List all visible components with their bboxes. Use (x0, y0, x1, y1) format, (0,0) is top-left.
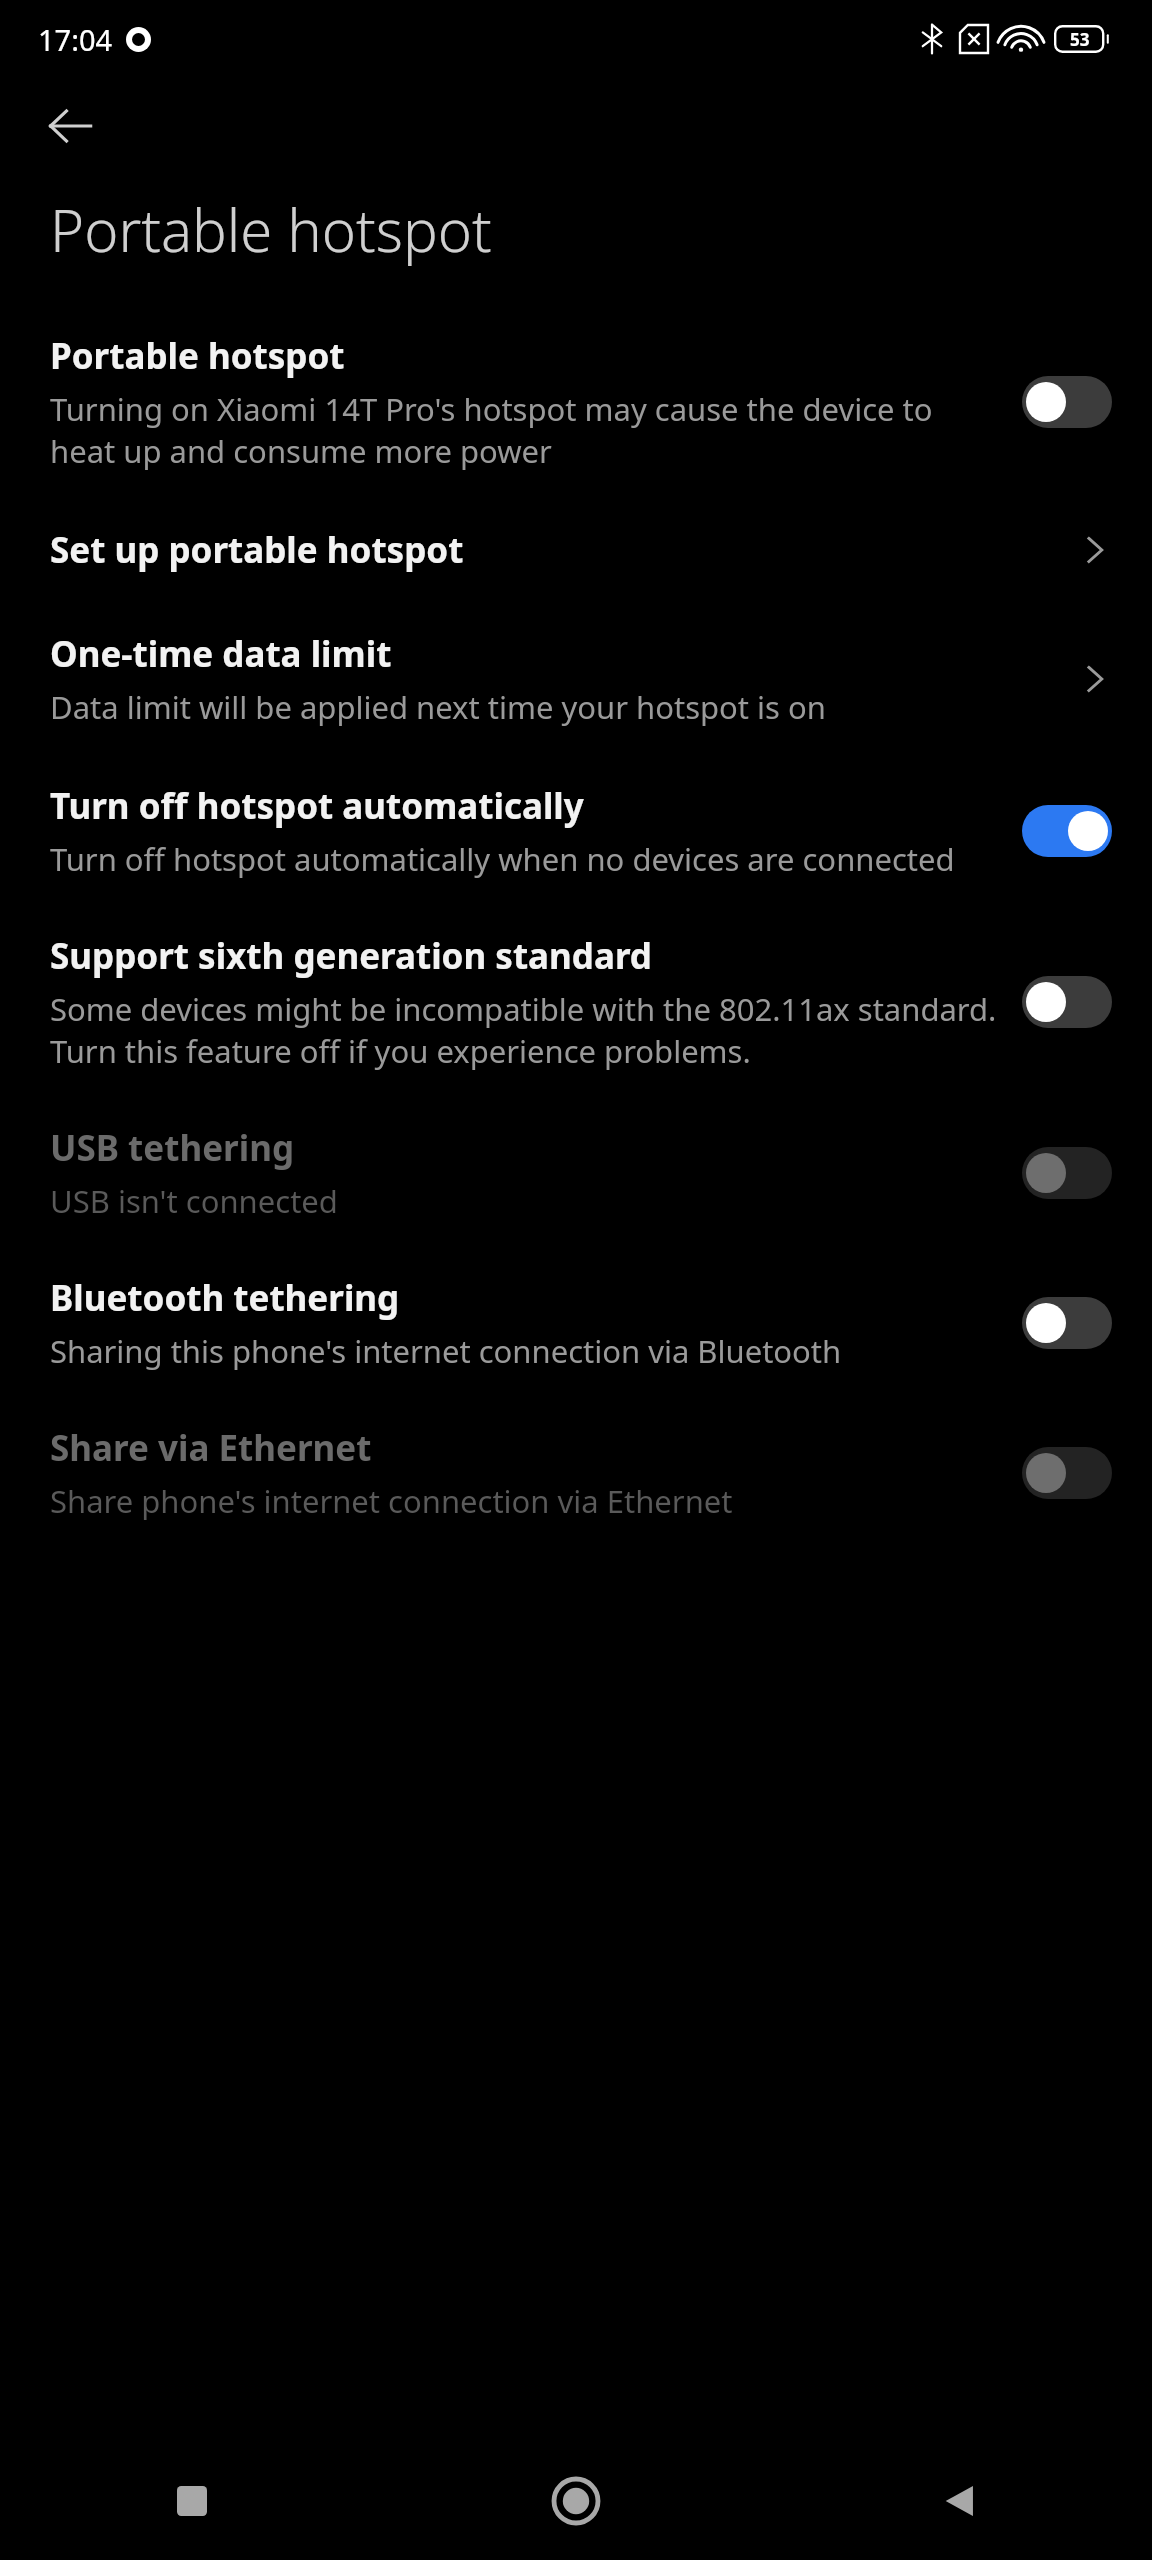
staticText: 17:04 (38, 20, 113, 59)
button[interactable]: Toggle (1022, 1297, 1112, 1349)
staticText: Data limit will be applied next time you… (50, 686, 826, 728)
button[interactable]: Toggle (1022, 376, 1112, 428)
button[interactable]: Portable hotspot (0, 306, 1152, 498)
button[interactable]: One-time data limit (0, 602, 1152, 756)
staticText: Turning on Xiaomi 14T Pro's hotspot may … (50, 388, 998, 472)
staticText: One-time data limit (50, 630, 392, 678)
staticText: USB tethering (50, 1124, 295, 1172)
button[interactable]: Toggle (1022, 805, 1112, 857)
button[interactable]: Home (384, 2442, 768, 2560)
button[interactable]: Turn off hotspot automatically (0, 756, 1152, 906)
staticText: Share phone's internet connection via Et… (50, 1480, 733, 1522)
staticText: USB isn't connected (50, 1180, 338, 1222)
button[interactable]: Back (30, 86, 110, 166)
button[interactable]: Toggle (1022, 976, 1112, 1028)
staticText: Support sixth generation standard (50, 932, 652, 980)
staticText: Turn off hotspot automatically when no d… (50, 838, 955, 880)
button[interactable]: USB tethering (0, 1098, 1152, 1248)
staticText: Some devices might be incompatible with … (50, 988, 998, 1072)
staticText: 53 (1070, 28, 1090, 51)
button[interactable]: Share via Ethernet (0, 1398, 1152, 1548)
staticText: Bluetooth tethering (50, 1274, 400, 1322)
button[interactable]: Toggle (1022, 1147, 1112, 1199)
staticText: Sharing this phone's internet connection… (50, 1330, 842, 1372)
staticText: Set up portable hotspot (50, 526, 464, 574)
button[interactable]: Set up portable hotspot (0, 498, 1152, 602)
button[interactable]: Back (768, 2442, 1152, 2560)
staticText: Turn off hotspot automatically (50, 782, 584, 830)
button[interactable]: Bluetooth tethering (0, 1248, 1152, 1398)
staticText: Share via Ethernet (50, 1424, 372, 1472)
button[interactable]: Support sixth generation standard (0, 906, 1152, 1098)
staticText: Portable hotspot (50, 190, 492, 269)
button[interactable]: Toggle (1022, 1447, 1112, 1499)
staticText: Portable hotspot (50, 332, 345, 380)
button[interactable]: Recents (0, 2442, 384, 2560)
